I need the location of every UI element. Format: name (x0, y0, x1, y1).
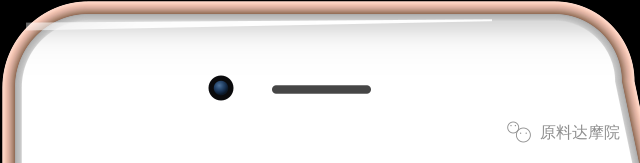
staticText: 原料达摩院 (540, 123, 620, 142)
